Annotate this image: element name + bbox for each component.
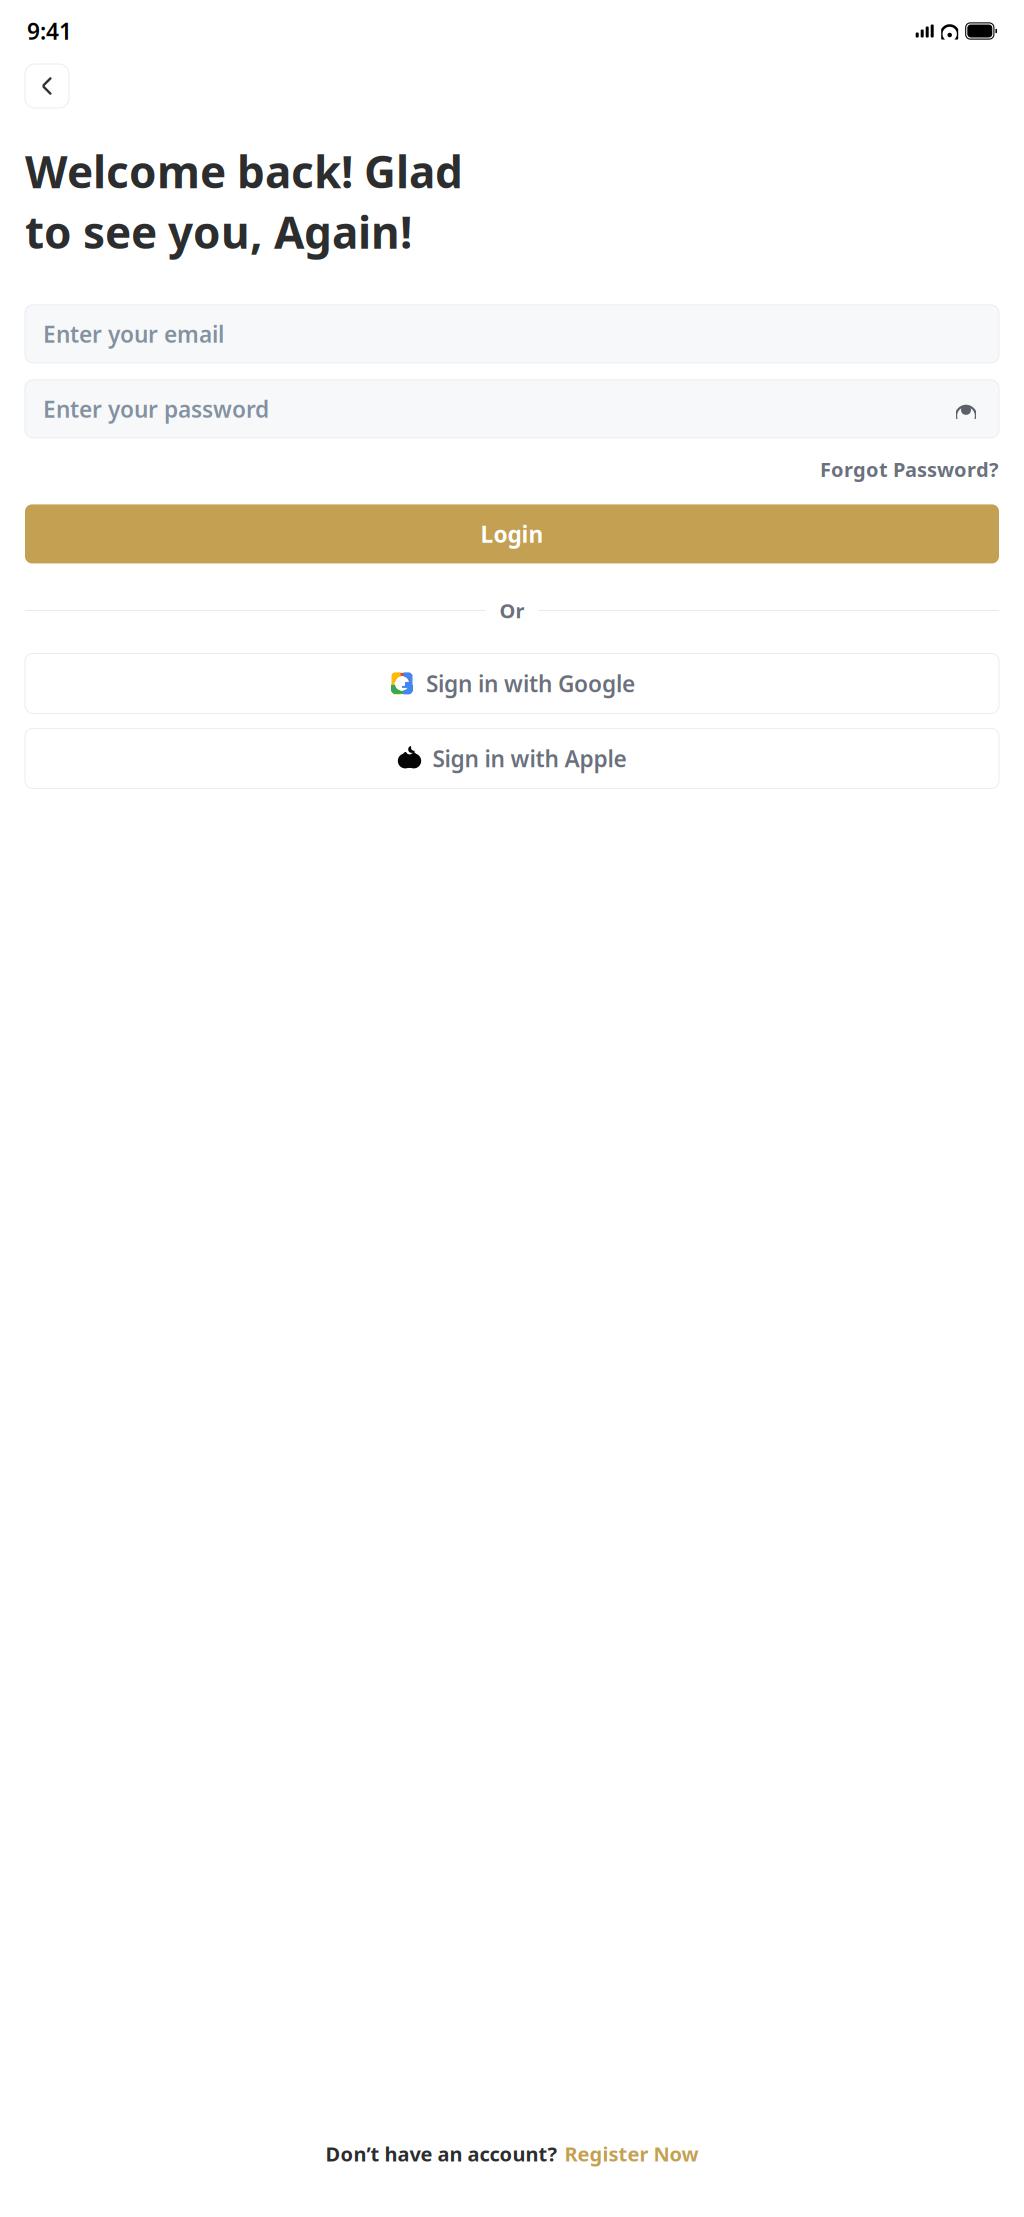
- button[interactable]: Forgot Password?: [820, 452, 999, 486]
- button[interactable]: Don’t have an account?: [325, 2134, 698, 2173]
- staticText: Don’t have an account?: [325, 2140, 557, 2167]
- button[interactable]: Show password: [951, 394, 981, 424]
- button[interactable]: Sign in with Google: [25, 653, 999, 713]
- staticText: Login: [480, 519, 543, 549]
- staticText: Sign in with Google: [426, 668, 635, 698]
- staticText: Welcome back! Glad: [25, 142, 463, 200]
- staticText: Forgot Password?: [820, 456, 999, 482]
- button[interactable]: Login: [25, 504, 999, 563]
- staticText: Register Now: [564, 2140, 698, 2167]
- staticText: Enter your email: [43, 319, 224, 349]
- button[interactable]: Back: [25, 64, 69, 108]
- staticText: 9:41: [27, 16, 72, 46]
- button[interactable]: Sign in with Apple: [25, 728, 999, 788]
- staticText: to see you, Again!: [25, 202, 412, 261]
- staticText: Enter your password: [43, 394, 269, 424]
- staticText: Sign in with Apple: [432, 743, 626, 773]
- staticText: Or: [499, 597, 524, 624]
